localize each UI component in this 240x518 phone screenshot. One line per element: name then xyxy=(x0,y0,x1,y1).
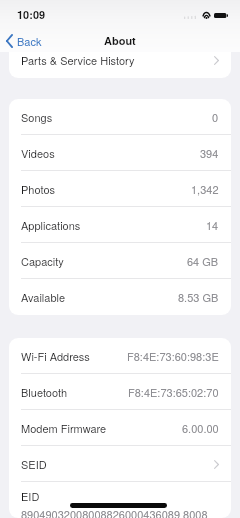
staticText: Songs xyxy=(21,109,53,125)
button[interactable]: Bluetooth xyxy=(9,374,231,410)
staticText: 394 xyxy=(200,145,219,161)
staticText: 1,342 xyxy=(191,181,219,197)
staticText: Videos xyxy=(21,145,55,161)
staticText: Back xyxy=(17,33,42,49)
button[interactable]: Available xyxy=(9,279,231,315)
button[interactable]: Wi-Fi Address xyxy=(9,338,231,374)
staticText: F8:4E:73:65:02:70 xyxy=(128,384,219,400)
staticText: Bluetooth xyxy=(21,384,68,400)
button[interactable]: Modem Firmware xyxy=(9,410,231,446)
button[interactable]: Back xyxy=(0,31,50,51)
staticText: Wi-Fi Address xyxy=(21,348,90,364)
button[interactable]: Photos xyxy=(9,171,231,207)
staticText: 64 GB xyxy=(187,253,219,269)
staticText: F8:4E:73:60:98:3E xyxy=(127,348,219,364)
staticText: Modem Firmware xyxy=(21,420,107,436)
staticText: EID xyxy=(21,488,40,504)
button[interactable]: EID xyxy=(9,482,231,518)
staticText: 89049032008008826000436089 8008 xyxy=(21,506,208,518)
button[interactable]: SEID xyxy=(9,446,231,482)
staticText: 14 xyxy=(206,217,219,233)
button[interactable]: Songs xyxy=(9,99,231,135)
staticText: Parts & Service History xyxy=(21,52,135,68)
button[interactable]: Parts & Service History xyxy=(9,42,231,78)
staticText: 6.00.00 xyxy=(182,420,219,436)
staticText: Available xyxy=(21,289,66,305)
staticText: SEID xyxy=(21,456,47,472)
button[interactable]: Applications xyxy=(9,207,231,243)
staticText: 10:09 xyxy=(17,7,46,23)
staticText: About xyxy=(104,33,136,49)
staticText: 0 xyxy=(212,109,219,125)
staticText: 8.53 GB xyxy=(178,289,219,305)
staticText: Photos xyxy=(21,181,56,197)
button[interactable]: Videos xyxy=(9,135,231,171)
staticText: Capacity xyxy=(21,253,64,269)
button[interactable]: Capacity xyxy=(9,243,231,279)
staticText: Applications xyxy=(21,217,81,233)
